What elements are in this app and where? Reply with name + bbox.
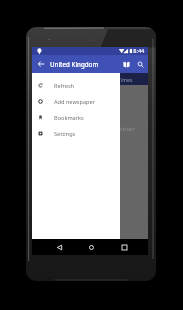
button[interactable]: Add newspaper — [32, 93, 120, 109]
staticText: 18:44 — [130, 47, 145, 55]
button[interactable]: Search — [133, 55, 148, 73]
staticText: Settings — [54, 130, 76, 138]
button[interactable]: Back — [49, 239, 69, 255]
staticText: Refresh — [54, 82, 75, 90]
staticText: Add newspaper — [54, 98, 95, 106]
button[interactable]: Home — [81, 239, 101, 255]
button[interactable]: Back — [32, 55, 49, 73]
staticText: Advertiser — [106, 125, 135, 133]
staticText: Times — [118, 76, 133, 83]
button[interactable]: Bookmarks — [32, 109, 120, 125]
staticText: Bookmarks — [54, 114, 84, 122]
button[interactable]: Newspapers — [119, 55, 133, 73]
button[interactable]: Refresh — [32, 77, 120, 93]
staticText: United Kingdom — [50, 60, 99, 68]
button[interactable]: Settings — [32, 125, 120, 141]
button[interactable]: Recents — [114, 239, 134, 255]
